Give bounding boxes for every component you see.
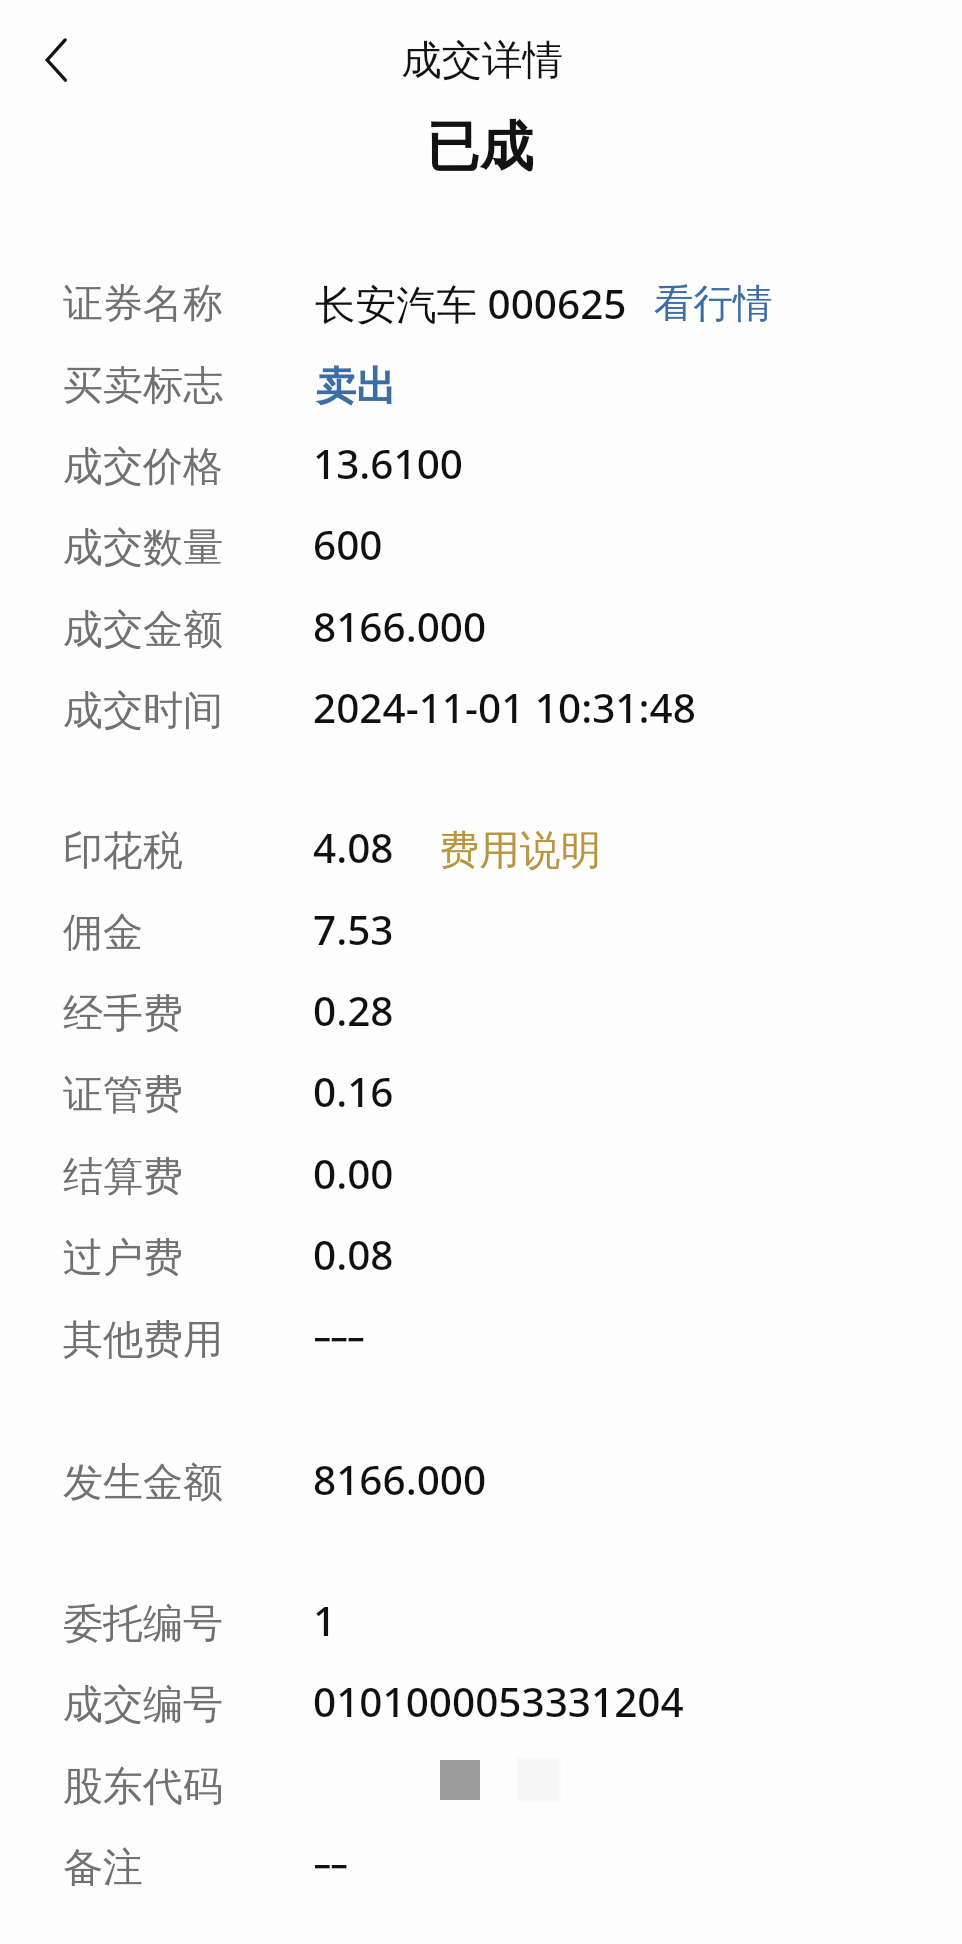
button[interactable]: Back <box>10 8 106 104</box>
staticText: 成交金额 <box>63 598 223 658</box>
staticText: 0.00 <box>313 1142 394 1202</box>
staticText: 证管费 <box>63 1063 183 1123</box>
staticText: 0101000053331204 <box>313 1670 684 1730</box>
staticText: 长安汽车 000625 <box>315 272 627 334</box>
staticText: 成交数量 <box>63 516 223 576</box>
staticText: 股东代码 <box>63 1755 223 1815</box>
staticText: 费用说明 <box>439 819 601 879</box>
staticText: 印花税 <box>63 819 183 879</box>
staticText: 8166.000 <box>313 1448 487 1508</box>
staticText: 13.6100 <box>313 432 464 492</box>
staticText: 成交时间 <box>63 679 223 739</box>
staticText: 佣金 <box>63 901 143 961</box>
staticText: 过户费 <box>63 1226 183 1286</box>
button[interactable]: 费用说明 <box>433 805 605 869</box>
staticText: 成交详情 <box>401 29 563 89</box>
staticText: 1 <box>313 1589 337 1649</box>
button[interactable]: 看行情 <box>648 258 778 322</box>
staticText: 0.16 <box>313 1060 394 1120</box>
staticText: 0.08 <box>313 1223 394 1283</box>
staticText: 600 <box>313 513 383 573</box>
staticText: 2024-11-01 10:31:48 <box>313 676 696 736</box>
staticText: 其他费用 <box>63 1308 223 1368</box>
staticText: 证券名称 <box>63 272 223 332</box>
staticText: 8166.000 <box>313 595 487 655</box>
staticText: 经手费 <box>63 982 183 1042</box>
staticText: 发生金额 <box>63 1451 223 1511</box>
staticText: 备注 <box>63 1836 143 1896</box>
button[interactable]: 卖出 <box>310 341 406 405</box>
staticText: 7.53 <box>313 898 394 958</box>
staticText: 成交价格 <box>63 435 223 495</box>
staticText: 已成 <box>426 105 533 185</box>
staticText: 成交编号 <box>63 1673 223 1733</box>
staticText: 买卖标志 <box>63 354 223 414</box>
staticText: 卖出 <box>316 355 396 415</box>
staticText: 委托编号 <box>63 1592 223 1652</box>
staticText: 结算费 <box>63 1145 183 1205</box>
staticText: 4.08 <box>313 816 394 876</box>
staticText: 看行情 <box>654 272 773 332</box>
staticText: 0.28 <box>313 979 394 1039</box>
